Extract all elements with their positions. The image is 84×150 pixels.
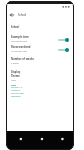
staticText: Version 1.0 bbox=[11, 86, 23, 89]
staticText: Source code bbox=[11, 92, 24, 95]
button[interactable]: Recents bbox=[51, 131, 73, 150]
staticText: Number of weeks bbox=[11, 57, 34, 61]
staticText: Feedback bbox=[11, 95, 21, 98]
button[interactable]: Source code bbox=[11, 92, 73, 95]
staticText: Display bbox=[11, 70, 21, 73]
button[interactable]: Number of weeks bbox=[7, 56, 73, 66]
button[interactable]: Show weekend bbox=[7, 44, 73, 54]
button[interactable]: Back bbox=[7, 131, 29, 150]
staticText: School bbox=[11, 25, 20, 28]
staticText: 2 weeks bbox=[11, 62, 19, 65]
staticText: Description here bbox=[11, 40, 28, 43]
button[interactable]: Home bbox=[29, 131, 51, 150]
staticText: Example item bbox=[11, 35, 29, 39]
button[interactable]: Feedback bbox=[11, 95, 73, 98]
button[interactable]: Version 1.0 bbox=[11, 86, 73, 89]
staticText: Info bbox=[11, 83, 16, 86]
button[interactable]: Back bbox=[8, 11, 16, 19]
staticText: Theme bbox=[11, 74, 20, 78]
staticText: Licenses bbox=[11, 89, 20, 92]
button[interactable]: Theme bbox=[7, 74, 73, 82]
button[interactable]: Example item bbox=[7, 34, 73, 44]
staticText: Show weekend bbox=[11, 45, 31, 49]
staticText: Light bbox=[11, 79, 16, 82]
button[interactable]: Licenses bbox=[11, 89, 73, 92]
staticText: School bbox=[18, 13, 27, 17]
button[interactable]: Info bbox=[11, 83, 73, 86]
staticText: In calendar view bbox=[11, 50, 28, 53]
